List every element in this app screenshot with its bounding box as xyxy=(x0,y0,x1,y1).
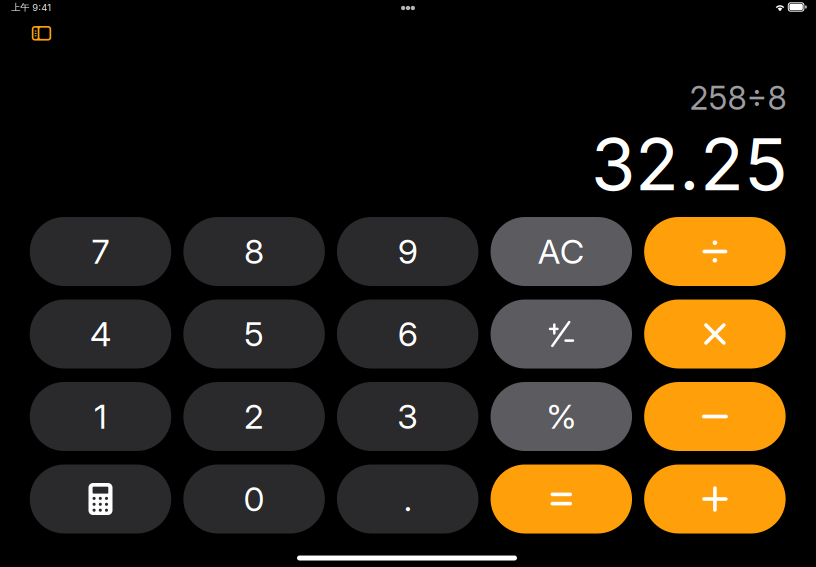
button[interactable]: Divide xyxy=(644,217,786,286)
button[interactable]: Equals xyxy=(490,464,632,533)
staticText: 1 xyxy=(94,396,107,437)
staticText: 上午 9:41 xyxy=(11,2,51,13)
button[interactable]: 5 xyxy=(183,299,325,368)
button[interactable]: 8 xyxy=(183,217,325,286)
staticText: 5 xyxy=(244,313,264,354)
staticText: 8 xyxy=(244,231,264,272)
staticText: . xyxy=(404,478,412,519)
button[interactable]: 4 xyxy=(30,299,171,368)
button[interactable]: Multiply xyxy=(644,299,786,368)
staticText: 9 xyxy=(398,231,418,272)
button[interactable]: Plus Minus xyxy=(490,299,632,368)
button[interactable]: 0 xyxy=(183,464,325,533)
staticText: 4 xyxy=(90,313,111,354)
button[interactable]: % xyxy=(490,382,632,451)
button[interactable]: . xyxy=(337,464,478,533)
button[interactable]: 1 xyxy=(30,382,171,451)
button[interactable]: AC xyxy=(490,217,632,286)
staticText: 0 xyxy=(244,478,265,519)
button[interactable]: Calculator xyxy=(30,464,171,533)
staticText: 258÷8 xyxy=(689,78,786,117)
button[interactable]: Minus xyxy=(644,382,786,451)
button[interactable]: 9 xyxy=(337,217,478,286)
button[interactable]: Plus xyxy=(644,464,786,533)
button[interactable]: 7 xyxy=(30,217,171,286)
staticText: 6 xyxy=(398,313,418,354)
button[interactable]: 2 xyxy=(183,382,325,451)
staticText: AC xyxy=(538,231,585,272)
button[interactable]: Show Sidebar xyxy=(22,17,60,49)
staticText: 3 xyxy=(397,396,418,437)
staticText: 32.25 xyxy=(591,120,788,207)
button[interactable]: 3 xyxy=(337,382,478,451)
staticText: % xyxy=(546,396,576,437)
staticText: 2 xyxy=(244,396,264,437)
button[interactable]: 6 xyxy=(337,299,478,368)
staticText: 7 xyxy=(91,231,109,272)
